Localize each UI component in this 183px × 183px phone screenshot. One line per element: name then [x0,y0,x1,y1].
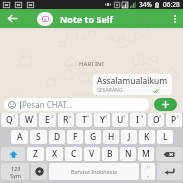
button[interactable]: H [103,130,119,144]
staticText: Sym [10,172,21,179]
button[interactable]: T [76,113,92,127]
staticText: 7 [123,114,126,119]
button[interactable]: R [58,113,74,127]
staticText: HARI INI [79,60,104,68]
staticText: SEKARANG [97,87,123,94]
button[interactable]: Y [94,113,110,127]
staticText: D [54,131,61,143]
staticText: 1 [13,114,16,119]
button[interactable]: M [138,147,154,161]
staticText: K [144,131,150,143]
staticText: W [25,114,33,126]
staticText: R [63,114,69,126]
staticText: 3 [51,114,54,119]
staticText: O [153,114,160,126]
staticText: Z [33,148,38,160]
staticText: A [17,131,23,143]
button[interactable]: Z [27,147,44,161]
button[interactable]: Period [141,163,155,180]
staticText: 6 [105,114,108,119]
staticText: B [107,148,113,160]
staticText: . [147,170,149,180]
button[interactable]: U [112,113,128,127]
button[interactable]: L [157,130,173,144]
button[interactable]: C [65,147,82,161]
staticText: C [71,148,77,160]
staticText: 4 [69,114,72,119]
button[interactable]: F [67,130,83,144]
button[interactable]: B [102,147,118,161]
staticText: 123 [11,165,21,172]
button[interactable]: S [30,130,47,144]
staticText: Q [6,114,13,126]
staticText: Note to Self [60,13,113,25]
button[interactable]: G [85,130,101,144]
staticText: N [125,148,132,160]
button[interactable]: W [20,113,37,127]
button[interactable]: Enter [157,163,182,180]
staticText: 34% [139,0,152,9]
button[interactable]: X [46,147,63,161]
button[interactable]: N [120,147,136,161]
button[interactable]: A [11,130,28,144]
button[interactable]: Assalamualaikum [97,75,168,94]
button[interactable]: Pesan CHAT... [4,98,149,111]
staticText: T [82,114,87,126]
staticText: G [90,131,97,143]
button[interactable]: Shift [1,147,25,161]
staticText: 8 [141,114,144,119]
button[interactable]: I [130,113,146,127]
button[interactable]: P [166,113,182,127]
staticText: H [108,131,115,143]
button[interactable]: More options [167,9,183,28]
button[interactable]: D [49,130,65,144]
staticText: I [136,114,140,126]
button[interactable]: Q [1,113,18,127]
staticText: Bahasa Indonesia [71,168,117,175]
button[interactable]: Back [0,9,24,28]
button[interactable]: O [148,113,164,127]
staticText: F [73,131,78,143]
staticText: Pesan CHAT... [22,99,73,110]
staticText: 06:28 [163,0,180,9]
button[interactable]: Numbers and symbols [1,163,29,180]
staticText: X [52,148,58,160]
staticText: P [171,114,177,126]
staticText: E [45,114,50,126]
button[interactable]: Backspace [156,147,182,161]
staticText: 2 [32,114,35,119]
button[interactable]: J [121,130,137,144]
button[interactable]: Space [49,163,139,180]
staticText: 9 [159,114,162,119]
staticText: U [117,114,124,126]
staticText: L [163,131,168,143]
staticText: , ? ! [145,165,151,170]
button[interactable]: K [139,130,155,144]
button[interactable]: Profile photo [37,12,53,26]
staticText: M [142,148,150,160]
staticText: 5 [87,114,90,119]
staticText: Assalamualaikum [97,75,168,87]
button[interactable]: Send [154,98,177,111]
button[interactable]: Settings [31,163,47,180]
staticText: Y [100,114,105,126]
staticText: S [36,131,41,143]
staticText: V [89,148,95,160]
button[interactable]: E [39,113,56,127]
staticText: 0 [177,114,180,119]
staticText: J [128,131,131,143]
button[interactable]: V [84,147,100,161]
